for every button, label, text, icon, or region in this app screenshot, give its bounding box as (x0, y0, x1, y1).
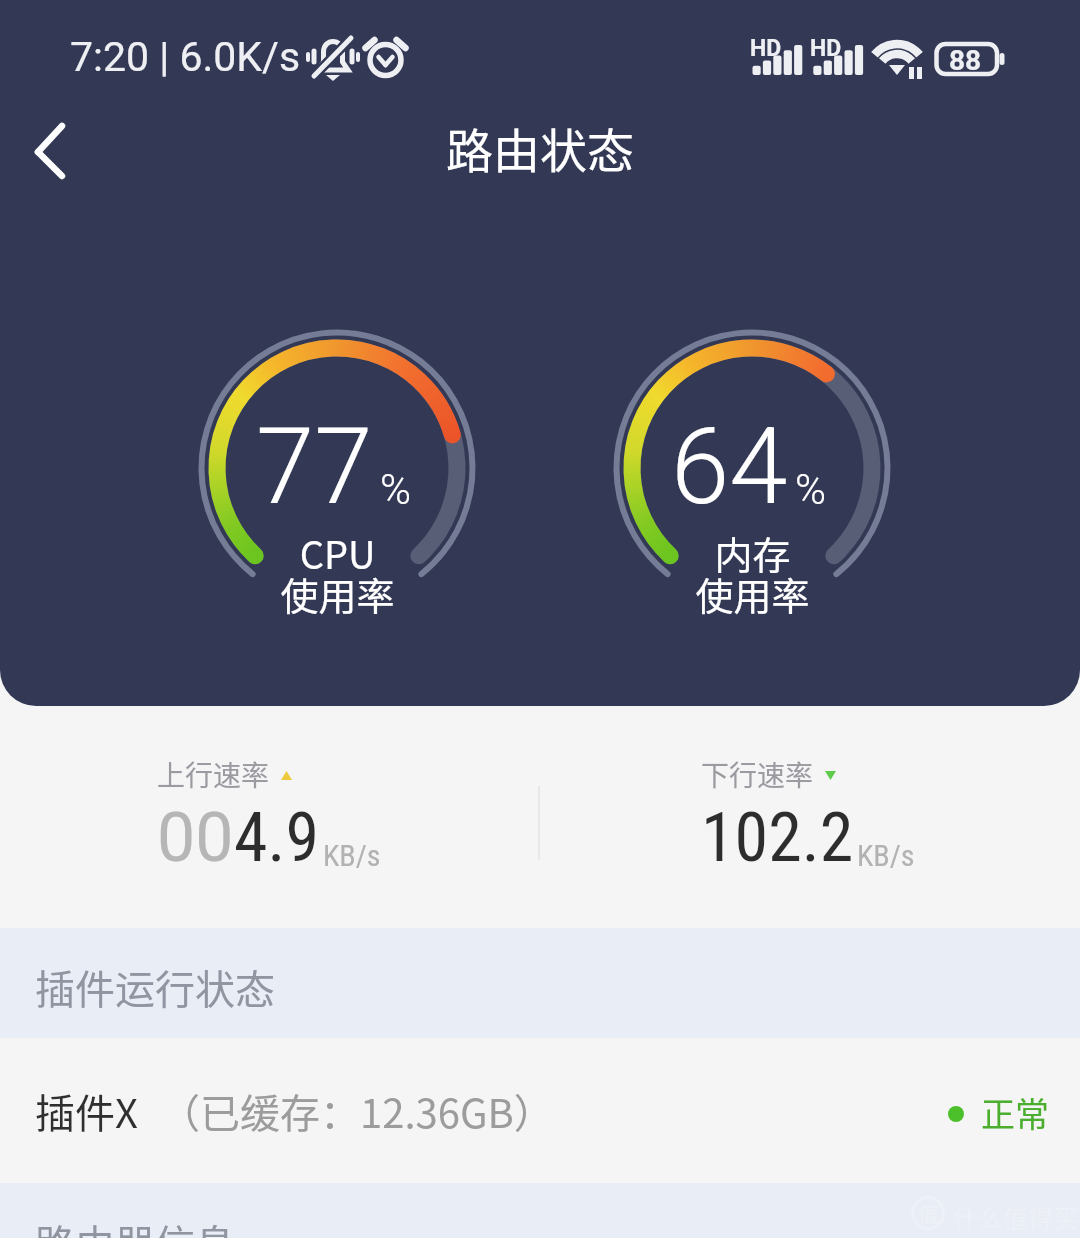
staticText: HD (810, 35, 842, 62)
staticText: 上行速率 (157, 754, 270, 795)
staticText: 4.9 (234, 798, 320, 878)
staticText: 64 (671, 406, 788, 529)
button[interactable] (540, 706, 1080, 928)
button[interactable]: Back (8, 106, 98, 196)
staticText: % (795, 465, 827, 514)
staticText: 77 (256, 406, 373, 529)
button[interactable]: CPU 使用率 77% (192, 320, 482, 640)
staticText: 00 (157, 798, 234, 878)
staticText: 插件X (35, 1082, 138, 1140)
staticText: KB/s (857, 838, 915, 873)
button[interactable]: 内存使用率 64% (607, 320, 897, 640)
staticText: 路由状态 (446, 113, 634, 181)
staticText: CPU 使用率 (280, 525, 395, 621)
button[interactable]: 插件X (0, 1038, 1080, 1183)
staticText: 插件运行状态 (35, 958, 275, 1016)
button[interactable] (0, 706, 540, 928)
staticText: 正常 (981, 1088, 1049, 1137)
staticText: 内存 使用率 (695, 525, 810, 621)
staticText: （已缓存：12.36GB） (160, 1082, 554, 1140)
staticText: 下行速率 (701, 754, 814, 795)
staticText: 7:20 | 6.0K/s (70, 33, 301, 81)
staticText: % (380, 465, 412, 514)
staticText: 102.2 (701, 798, 854, 878)
staticText: 88 (949, 44, 982, 77)
staticText: KB/s (323, 838, 381, 873)
staticText: 路由器信息 (35, 1213, 235, 1238)
staticText: HD (750, 35, 782, 62)
